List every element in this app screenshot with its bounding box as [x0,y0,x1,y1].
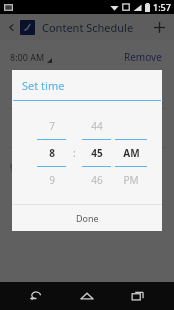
staticText: 7 [49,119,55,133]
button[interactable]: Remove [122,48,164,66]
staticText: 45 [91,146,103,160]
staticText: : [73,146,76,160]
button[interactable]: Back [4,20,18,34]
staticText: 9:30 AM [10,161,45,173]
staticText: Set time [22,78,65,93]
button[interactable]: Add [148,16,170,38]
staticText: 8:00 AM [10,51,45,63]
staticText: Content Schedule [42,20,134,35]
staticText: 9 [49,173,55,187]
staticText: Remove [124,50,162,64]
button[interactable]: Recent apps [123,282,153,310]
staticText: AM [123,146,140,160]
button[interactable]: Remove [122,158,164,176]
button[interactable]: AM [113,113,149,193]
staticText: PM [123,173,139,187]
button[interactable]: 7 [35,113,68,193]
button[interactable]: 44 [80,113,113,193]
button[interactable]: Done [12,205,162,231]
staticText: 46 [91,173,103,187]
staticText: Done [76,212,99,224]
staticText: 8 [49,146,55,160]
staticText: 44 [91,119,103,133]
button[interactable]: 9:30 AM [0,156,174,178]
button[interactable]: Home [72,282,102,310]
button[interactable]: 8:00 AM [0,46,174,68]
staticText: Remove [124,160,162,174]
staticText: 1:57 [153,1,171,13]
button[interactable]: Back [21,282,51,310]
